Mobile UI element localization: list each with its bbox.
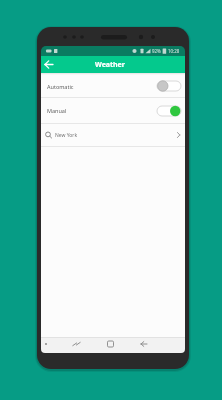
button[interactable]	[157, 80, 181, 92]
staticText: 10:28	[168, 48, 180, 54]
staticText: Manual	[47, 107, 67, 114]
button[interactable]: Manual	[41, 98, 185, 123]
staticText: 92%	[152, 48, 161, 54]
button[interactable]	[157, 105, 181, 117]
button[interactable]: New York	[41, 124, 185, 146]
staticText: Automatic	[47, 83, 74, 90]
staticText: Weather	[95, 60, 125, 70]
button[interactable]: Automatic	[41, 75, 185, 97]
staticText: New York	[55, 132, 78, 139]
button[interactable]	[41, 56, 57, 73]
